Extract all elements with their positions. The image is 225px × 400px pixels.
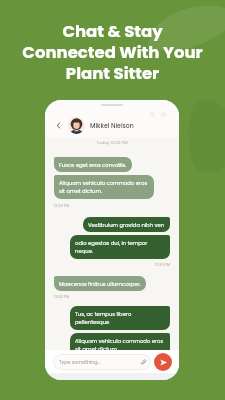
staticText: Vestibulum gravida nibh ven	[88, 221, 165, 228]
staticText: Fusce eget eros convallis.	[59, 161, 127, 168]
button[interactable]: Vestibulum gravida nibh ven	[83, 217, 170, 232]
staticText: Type something...	[59, 359, 140, 366]
staticText: Tus, ac tempus libero pellentesque	[75, 310, 165, 326]
staticText: Mikkel Nielson	[90, 121, 134, 130]
staticText: odio egestas dui, in tempor neque.	[75, 239, 165, 255]
button[interactable]: Aliquam vehicula commodo eros sit amet d…	[70, 333, 170, 357]
staticText: 12:30 PM	[54, 262, 170, 267]
button[interactable]: Maecenas finibus ullamcorper.	[54, 276, 146, 291]
staticText: Aliquam vehicula commodo eros sit amet d…	[75, 337, 165, 353]
staticText: Aliquam vehicula commodo eros sit amet d…	[59, 179, 149, 195]
button[interactable]: Type something...	[53, 354, 151, 370]
staticText: Chat & Stay Connected With Your Plant Si…	[6, 20, 219, 85]
button[interactable]: Fusce eget eros convallis.	[54, 157, 132, 172]
button[interactable]: odio egestas dui, in tempor neque.	[70, 235, 170, 259]
button[interactable]: Tus, ac tempus libero pellentesque	[70, 306, 170, 330]
button[interactable]: Back	[53, 120, 64, 131]
button[interactable]: Send	[154, 353, 172, 371]
staticText: 12:30 PM	[54, 294, 170, 299]
staticText: Today 12:30 PM	[54, 140, 170, 146]
staticText: 12:30 PM	[54, 359, 170, 364]
staticText: 12:30 PM	[54, 203, 170, 208]
staticText: Maecenas finibus ullamcorper.	[59, 280, 141, 287]
button[interactable]: Aliquam vehicula commodo eros sit amet d…	[54, 175, 154, 199]
